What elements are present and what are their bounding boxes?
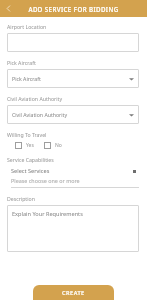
button[interactable]: Yes (15, 141, 34, 150)
button[interactable]: Explain Your Requirements (7, 205, 139, 252)
staticText: Please choose one or more (11, 177, 80, 184)
staticText: CREATE (62, 289, 85, 297)
button[interactable] (7, 33, 139, 52)
button[interactable]: Back (0, 0, 17, 17)
button[interactable]: Pick Aircraft (7, 69, 139, 88)
button[interactable]: CREATE (33, 285, 114, 300)
staticText: No (55, 142, 62, 149)
staticText: Civil Aviation Authority (7, 95, 63, 102)
staticText: Select Services (11, 167, 50, 175)
staticText: Airport Location (7, 23, 47, 30)
staticText: Explain Your Requirements (12, 210, 83, 218)
staticText: ADD SERVICE FOR BIDDING (28, 5, 119, 13)
staticText: Yes (26, 142, 34, 149)
staticText: Civil Aviation Authority (12, 111, 68, 118)
button[interactable]: Select Services (7, 166, 139, 188)
staticText: Pick Aircraft (12, 75, 41, 82)
staticText: Willing To Travel (7, 131, 47, 138)
staticText: Description (7, 195, 35, 202)
button[interactable]: Civil Aviation Authority (7, 105, 139, 124)
button[interactable]: No (44, 141, 62, 150)
staticText: Service Capabilities (7, 156, 54, 163)
staticText: Pick Aircraft (7, 59, 36, 66)
